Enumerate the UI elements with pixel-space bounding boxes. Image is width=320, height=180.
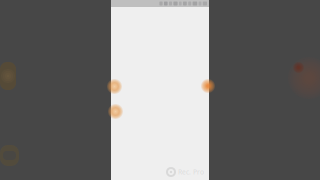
button[interactable]: Screen recorder watermark (166, 167, 204, 177)
staticText: Rec. Pro (178, 168, 204, 176)
